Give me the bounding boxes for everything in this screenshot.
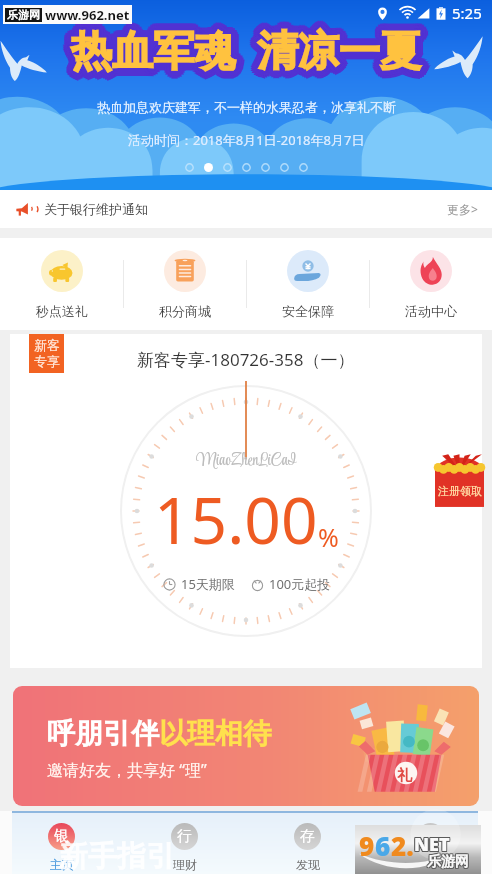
button[interactable]: 存 [246,813,369,874]
staticText: 安全保障 [282,303,334,319]
staticText: 清凉一夏 [254,22,418,74]
button[interactable]: 积分商城 [124,238,246,330]
staticText: MiaoZhenLiCaI [196,448,297,474]
staticText: 热血军魂 [75,20,239,72]
staticText: 热血军魂 [69,26,233,78]
staticText: 热血军魂 [68,22,232,74]
staticText: 清凉一夏 [262,24,426,76]
button[interactable]: 注册领取 [434,452,485,509]
staticText: 清凉一夏 [251,22,415,74]
staticText: 热血军魂 [76,28,240,80]
staticText: 乐游网 [426,852,468,870]
staticText: 热血军魂 [78,28,242,80]
staticText: 清凉一夏 [259,31,423,83]
staticText: 清凉一夏 [259,33,423,85]
staticText: 热血军魂 [67,20,231,72]
staticText: 热血军魂 [69,27,233,79]
button[interactable]: 银 [0,813,123,874]
staticText: 清凉一夏 [250,28,414,80]
staticText: 清凉一夏 [259,19,423,71]
button[interactable]: 行 [123,813,246,874]
staticText: 活动时间：2018年8月1日-2018年8月7日 [128,131,365,149]
button[interactable]: 我 [369,813,492,874]
staticText: 热血军魂 [70,28,234,80]
staticText: 热血军魂 [71,19,235,71]
button[interactable]: 热血军魂 [0,0,492,190]
staticText: 清凉一夏 [261,20,425,72]
staticText: 主页 [50,857,74,872]
staticText: 热血军魂 [72,28,236,80]
button[interactable]: 秒点送礼 [0,238,123,330]
button[interactable]: 关于银行维护通知 [0,190,492,228]
staticText: 清凉一夏 [263,30,427,82]
staticText: 乐游网 [427,852,469,870]
staticText: 热血加息欢庆建军，不一样的水果忍者，冰享礼不断 [97,99,396,115]
staticText: 热血军魂 [74,22,238,74]
staticText: 热血军魂 [67,23,231,75]
staticText: 热血军魂 [71,31,235,83]
staticText: 清凉一夏 [264,24,428,76]
button[interactable]: 安全保障 [247,238,369,330]
staticText: 清凉一夏 [257,26,421,78]
staticText: 乐游网 [426,854,468,872]
staticText: 清凉一夏 [258,24,422,76]
button[interactable]: 新客专享-180726-358（一） [10,334,482,668]
staticText: 乐游网 [426,853,468,871]
staticText: 清凉一夏 [265,26,429,78]
staticText: 清凉一夏 [262,28,426,80]
staticText: 热血军魂 [72,24,236,76]
staticText: 热血军魂 [73,25,237,77]
staticText: 存 [300,827,315,846]
staticText: 秒点送礼 [36,303,88,319]
staticText: % [318,520,339,554]
staticText: 15.00 [154,476,318,563]
staticText: 以理相待 [159,716,271,751]
staticText: 清凉一夏 [253,23,417,75]
button[interactable]: 活动中心 [370,238,492,330]
staticText: 热血军魂 [70,24,234,76]
staticText: 关于银行维护通知 [44,201,148,217]
staticText: 热血军魂 [70,24,234,76]
button[interactable]: 呼朋引伴 [13,686,479,806]
staticText: 热血军魂 [71,34,235,86]
staticText: 清凉一夏 [259,25,423,77]
staticText: 热血军魂 [73,25,237,77]
staticText: 热血军魂 [70,28,234,80]
staticText: 乐游网 [428,854,470,872]
staticText: 热血军魂 [73,27,237,79]
staticText: 乐游网 [427,853,469,871]
staticText: 乐游网 [7,8,40,22]
staticText: 热血军魂 [78,24,242,76]
staticText: 行 [177,827,192,846]
staticText: 热血军魂 [66,26,230,78]
staticText: www.962.net [45,6,130,24]
staticText: 清凉一夏 [257,31,421,83]
staticText: 清凉一夏 [255,27,419,79]
staticText: 热血军魂 [73,33,237,85]
staticText: 清凉一夏 [260,30,424,82]
staticText: 热血军魂 [71,29,235,81]
staticText: 15天期限 [181,575,235,593]
staticText: 清凉一夏 [253,32,417,84]
staticText: NET [413,832,449,857]
staticText: 清凉一夏 [255,21,419,73]
staticText: 热血军魂 [68,30,232,82]
staticText: 热血军魂 [72,24,236,76]
button[interactable]: 新客 专享 [29,334,64,373]
staticText: 清凉一夏 [261,29,425,81]
staticText: 热血军魂 [72,28,236,80]
staticText: 发现 [296,857,320,872]
staticText: 热血军魂 [64,26,228,78]
staticText: 新客专享-180726-358（一） [137,348,355,371]
staticText: 热血军魂 [67,29,231,81]
staticText: 清凉一夏 [264,28,428,80]
staticText: 热血军魂 [64,24,228,76]
staticText: 热血军魂 [66,28,230,80]
staticText: 热血军魂 [65,30,229,82]
staticText: 热血军魂 [77,30,241,82]
staticText: 热血军魂 [71,21,235,73]
staticText: 我的 [419,857,443,872]
staticText: 清凉一夏 [255,19,419,71]
staticText: 清凉一夏 [250,24,414,76]
staticText: 清凉一夏 [261,32,425,84]
